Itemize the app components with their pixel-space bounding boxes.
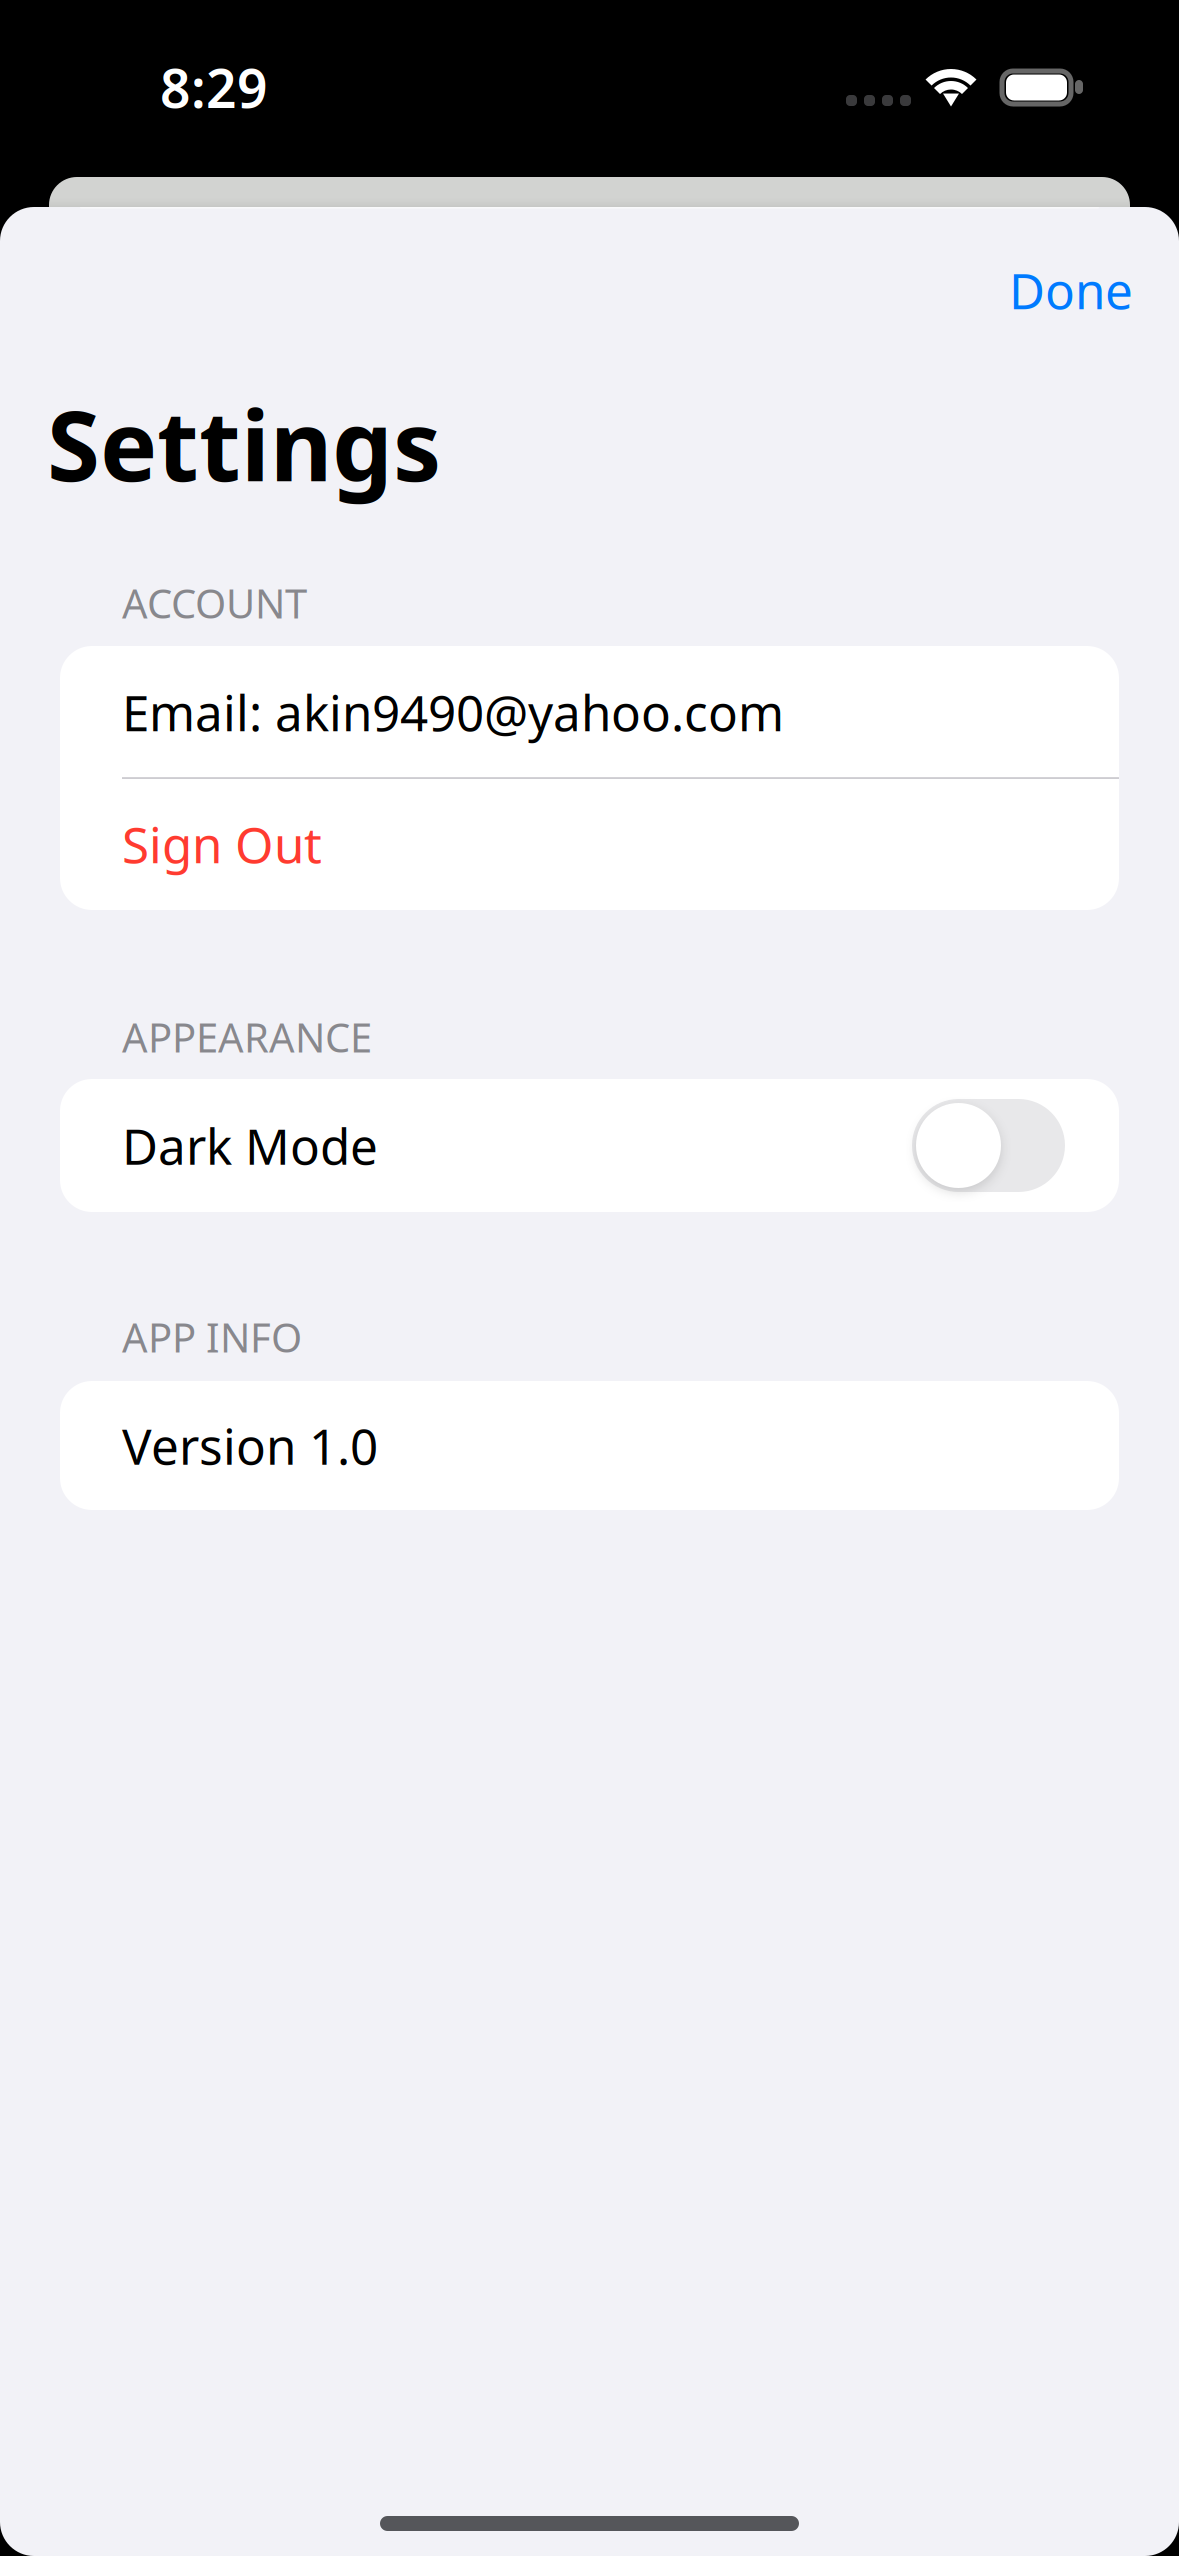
button[interactable]: Done bbox=[853, 224, 1133, 356]
staticText: Sign Out bbox=[122, 811, 322, 877]
staticText: APPEARANCE bbox=[122, 1010, 372, 1063]
staticText: Done bbox=[1009, 257, 1133, 323]
staticText: Dark Mode bbox=[122, 1113, 378, 1178]
staticText: Email: akin9490@yahoo.com bbox=[122, 679, 784, 745]
staticText: Settings bbox=[47, 380, 441, 508]
staticText: 8:29 bbox=[160, 52, 268, 123]
button[interactable]: Email: akin9490@yahoo.com bbox=[60, 646, 1119, 778]
button[interactable]: Sign Out bbox=[60, 778, 1119, 910]
staticText: APP INFO bbox=[122, 1310, 302, 1363]
button[interactable]: Dark Mode bbox=[60, 1079, 1119, 1212]
staticText: Version 1.0 bbox=[122, 1413, 378, 1478]
staticText: ACCOUNT bbox=[122, 576, 307, 629]
